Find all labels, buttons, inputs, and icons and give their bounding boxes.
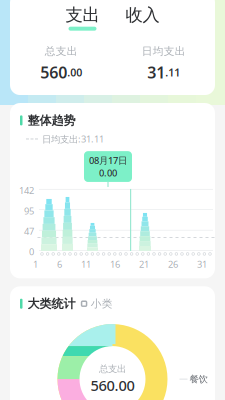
staticText: 21: [139, 258, 149, 270]
staticText: 日均支出:31.11: [42, 133, 104, 145]
staticText: 31: [197, 258, 207, 270]
staticText: .00: [67, 65, 82, 79]
staticText: 总支出: [45, 45, 78, 58]
staticText: 560: [40, 62, 67, 83]
staticText: 支出: [65, 4, 99, 26]
staticText: 收入: [125, 4, 159, 26]
staticText: 16: [110, 258, 120, 270]
staticText: 0: [29, 245, 34, 258]
staticText: 1: [33, 258, 38, 270]
staticText: 560.00: [90, 376, 134, 395]
staticText: 11: [81, 258, 91, 270]
staticText: 95: [24, 205, 34, 217]
staticText: .11: [165, 65, 180, 79]
button[interactable]: 收入: [123, 4, 161, 31]
staticText: 26: [168, 258, 178, 270]
staticText: 31: [147, 62, 165, 83]
staticText: 日均支出: [142, 45, 186, 58]
staticText: 142: [19, 184, 34, 197]
staticText: 08月17日: [89, 154, 127, 167]
staticText: 餐饮: [189, 373, 207, 385]
staticText: 整体趋势: [27, 113, 75, 128]
staticText: 0.00: [99, 167, 117, 179]
button[interactable]: 支出: [63, 4, 101, 31]
staticText: 6: [57, 258, 62, 270]
staticText: 47: [24, 225, 34, 237]
staticText: 总支出: [99, 363, 126, 375]
button[interactable]: 小类: [80, 297, 113, 310]
staticText: 大类统计: [27, 296, 75, 311]
staticText: 小类: [91, 297, 113, 310]
